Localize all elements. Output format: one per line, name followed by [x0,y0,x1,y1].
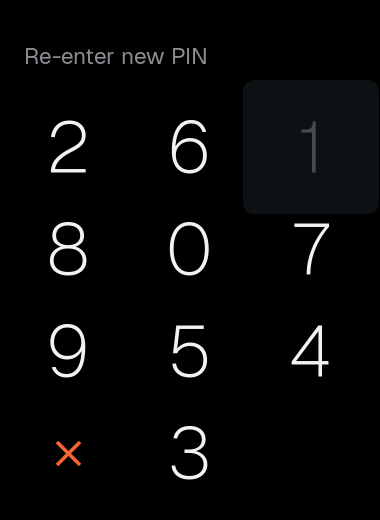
button[interactable]: 7 [243,182,379,316]
button[interactable]: 4 [243,284,379,418]
button[interactable]: 0 [121,182,257,316]
staticText: 0 [166,202,213,296]
staticText: 2 [46,100,90,194]
staticText: 5 [167,304,211,398]
button[interactable]: 9 [0,284,136,418]
button[interactable]: 1 [243,80,379,214]
staticText: 6 [167,100,212,194]
button[interactable]: Delete [0,386,136,520]
button[interactable]: 6 [121,80,257,214]
staticText: Re-enter new PIN [24,41,208,71]
staticText: 1 [298,100,324,194]
button[interactable]: 3 [121,386,257,520]
button[interactable]: 8 [0,182,136,316]
button[interactable]: 2 [0,80,136,214]
staticText: 9 [45,304,90,398]
staticText: 4 [289,304,333,398]
staticText: 3 [167,406,211,500]
staticText: 7 [293,202,329,296]
button[interactable]: 5 [121,284,257,418]
staticText: 8 [46,202,89,296]
